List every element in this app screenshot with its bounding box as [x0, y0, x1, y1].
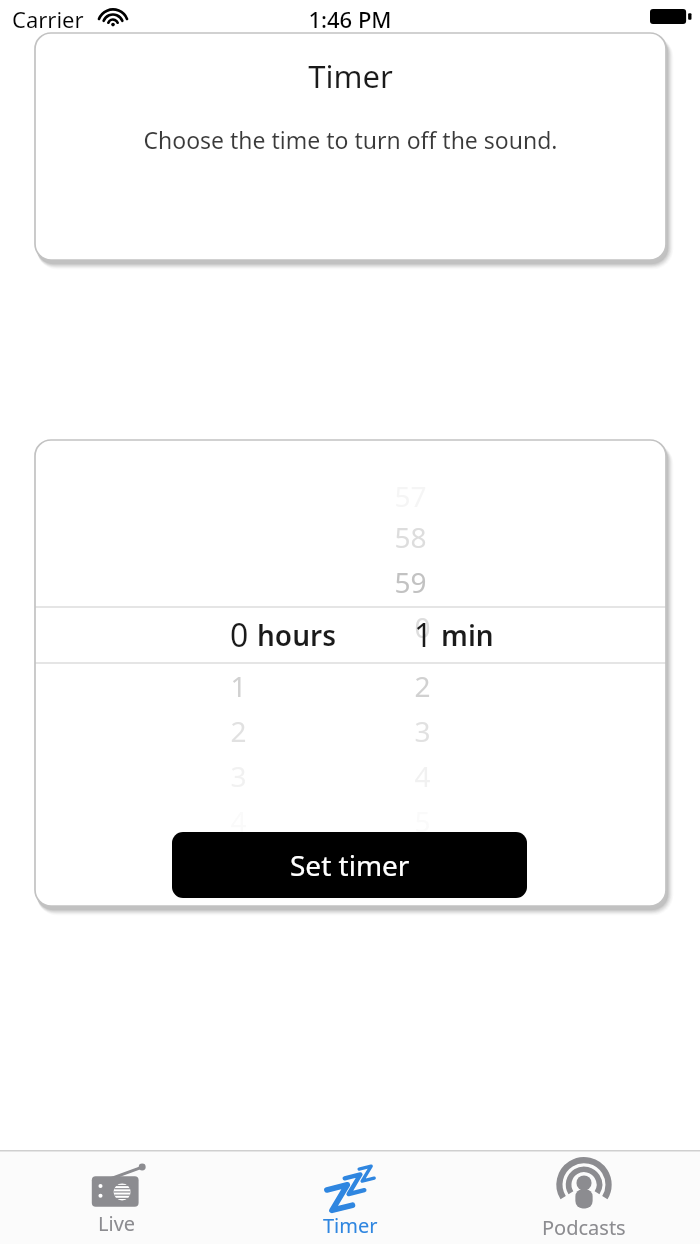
staticText: hours [257, 616, 336, 654]
button[interactable]: Live radio [0, 1150, 234, 1244]
staticText: 4 [230, 802, 247, 840]
staticText: Choose the time to turn off the sound. [35, 124, 666, 155]
staticText: 57 [394, 477, 427, 515]
staticText: 1 [414, 613, 433, 657]
other: Podcasts [557, 1164, 611, 1212]
button[interactable]: Podcasts [467, 1150, 700, 1244]
staticText: 0 [414, 608, 431, 646]
staticText: Carrier [12, 4, 84, 34]
staticText: 2 [414, 667, 431, 705]
staticText: Timer [35, 55, 666, 97]
staticText: 58 [394, 518, 427, 556]
staticText: 1 [230, 667, 247, 705]
staticText: 3 [414, 712, 431, 750]
button[interactable]: Set timer [172, 832, 527, 898]
staticText: Live [98, 1210, 136, 1237]
staticText: 3 [230, 757, 247, 795]
staticText: 5 [414, 802, 431, 840]
staticText: 0 [230, 613, 249, 657]
staticText: Podcasts [542, 1214, 626, 1241]
staticText: Set timer [290, 846, 410, 884]
staticText: Timer [323, 1212, 378, 1239]
staticText: min [441, 616, 494, 654]
button[interactable]: Sleep timer [234, 1150, 467, 1244]
staticText: 4 [414, 757, 431, 795]
other: Live radio [87, 1164, 147, 1208]
staticText: 1:46 PM [0, 4, 700, 34]
button[interactable]: 0 [35, 607, 666, 663]
other: Sleep timer [324, 1164, 378, 1210]
staticText: 2 [230, 712, 247, 750]
staticText: 59 [394, 563, 427, 601]
